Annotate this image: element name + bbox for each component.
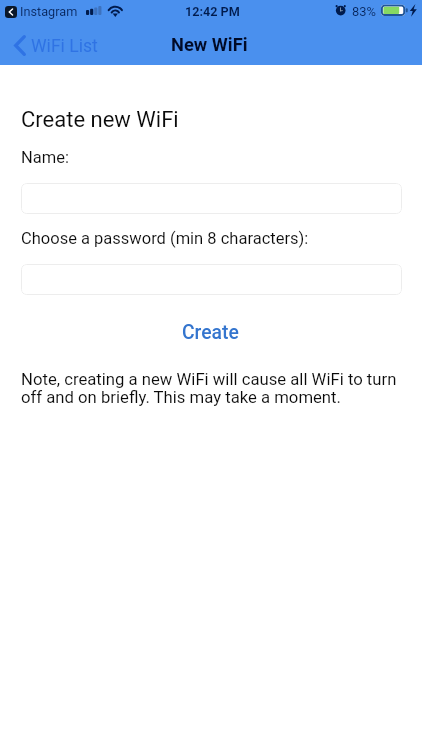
staticText: Instagram <box>20 4 78 19</box>
staticText: Create <box>182 321 239 344</box>
staticText: Name: <box>21 148 69 167</box>
staticText: 12:42 PM <box>185 4 240 19</box>
staticText: WiFi List <box>31 36 98 57</box>
button[interactable]: WiFi List <box>6 28 108 55</box>
staticText: 83% <box>352 4 376 19</box>
staticText: Create new WiFi <box>21 107 179 133</box>
button[interactable]: Create <box>177 317 244 348</box>
button[interactable] <box>21 183 402 214</box>
button[interactable] <box>21 264 402 295</box>
staticText: New WiFi <box>171 34 248 55</box>
staticText: Choose a password (min 8 characters): <box>21 229 309 248</box>
staticText: Note, creating a new WiFi will cause all… <box>21 370 403 407</box>
button[interactable]: Back to Instagram <box>5 6 17 18</box>
